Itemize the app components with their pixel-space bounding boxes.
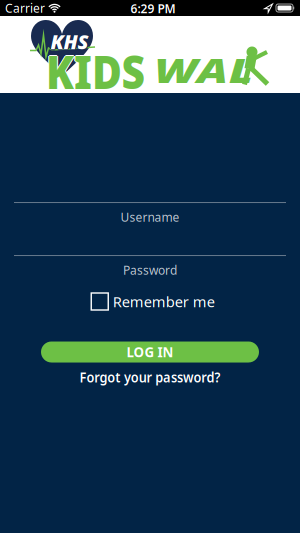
staticText: KHS (50, 28, 88, 55)
staticText: KIDS (40, 43, 150, 103)
staticText: KHS (50, 29, 88, 56)
button[interactable]: Forgot your password? (69, 367, 231, 387)
staticText: Forgot your password? (69, 367, 231, 387)
staticText: KHS (50, 27, 88, 54)
staticText: Remember me (113, 292, 215, 311)
button[interactable]: LOG IN (41, 341, 259, 362)
staticText: 6:29 PM (130, 0, 175, 16)
staticText: KIDS (40, 41, 150, 102)
button[interactable]: Remember me (91, 292, 215, 311)
staticText: KIDS (42, 41, 152, 102)
button[interactable]: Password (14, 255, 286, 278)
button[interactable]: Username (14, 202, 286, 225)
staticText: Carrier (5, 0, 45, 16)
staticText: Username (120, 209, 179, 225)
staticText: LOG IN (126, 343, 173, 361)
staticText: WAL (168, 48, 240, 92)
staticText: Password (123, 262, 177, 278)
staticText: KHS (49, 28, 87, 55)
staticText: KIDS (39, 41, 149, 102)
staticText: KHS (52, 28, 90, 55)
staticText: KIDS (40, 40, 150, 100)
